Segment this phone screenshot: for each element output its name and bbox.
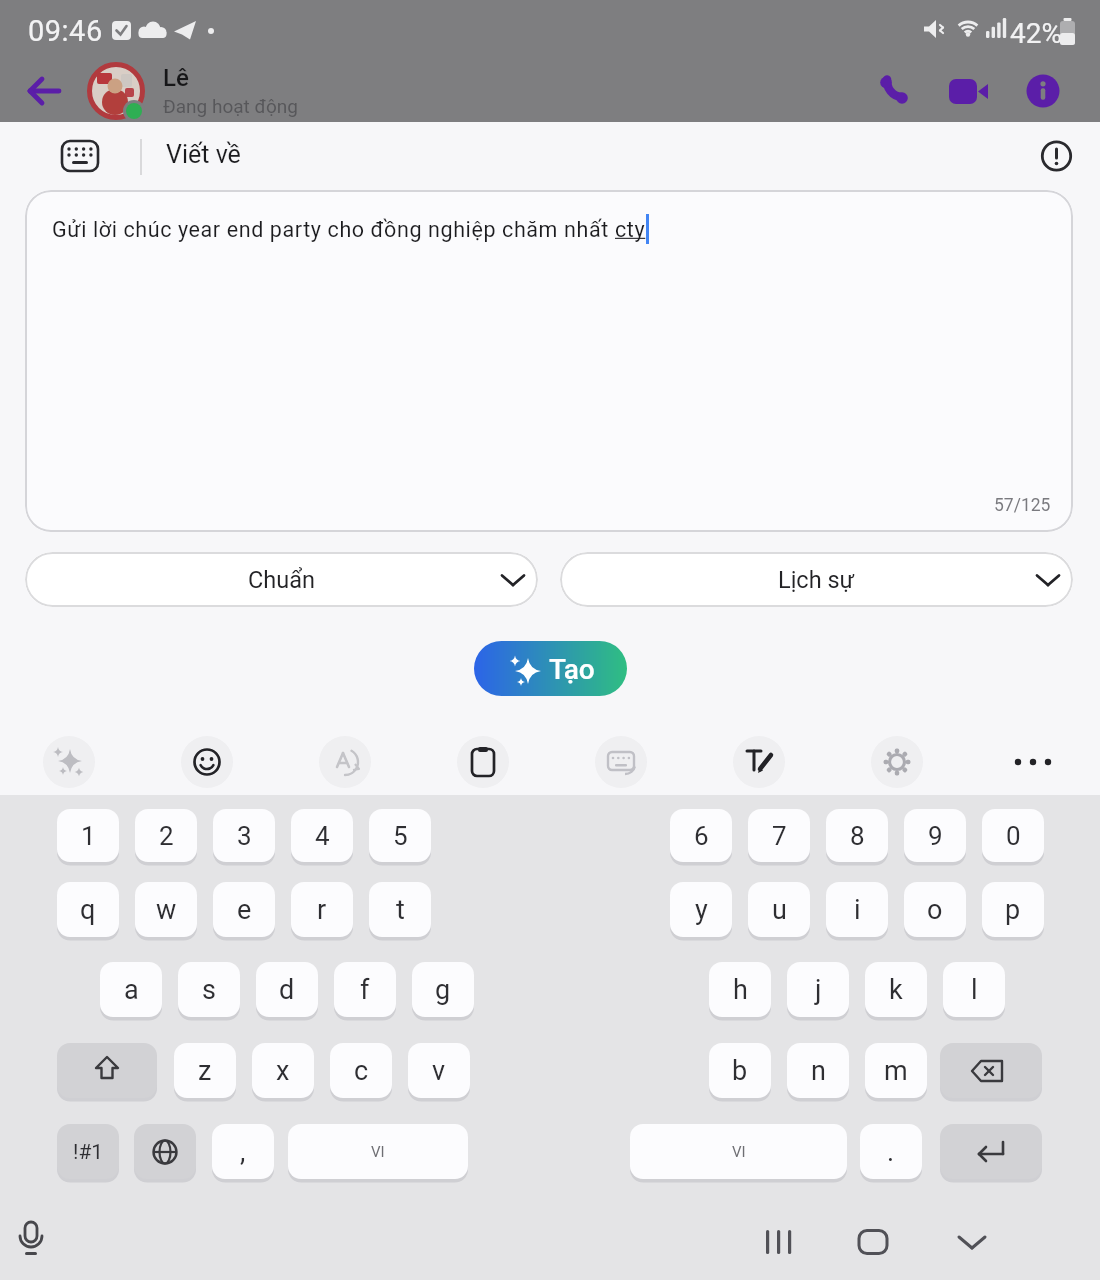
button[interactable] xyxy=(871,66,921,116)
button[interactable]: u xyxy=(748,882,810,938)
button[interactable]: i xyxy=(826,882,888,938)
button[interactable] xyxy=(48,130,112,182)
staticText: 3 xyxy=(237,821,252,851)
button[interactable] xyxy=(1007,736,1059,788)
button[interactable] xyxy=(871,736,923,788)
staticText: k xyxy=(889,974,903,1006)
staticText: x xyxy=(276,1055,290,1087)
button[interactable] xyxy=(940,1124,1042,1180)
button[interactable] xyxy=(134,1124,196,1180)
staticText: h xyxy=(733,974,748,1006)
button[interactable]: y xyxy=(670,882,732,938)
button[interactable] xyxy=(755,1218,803,1266)
button[interactable] xyxy=(181,736,233,788)
button[interactable]: e xyxy=(213,882,275,938)
staticText: 1 xyxy=(81,821,96,851)
button[interactable]: b xyxy=(709,1043,771,1099)
button[interactable]: 6 xyxy=(670,809,732,863)
button[interactable]: z xyxy=(174,1043,236,1099)
staticText: q xyxy=(80,894,96,926)
button[interactable]: 4 xyxy=(291,809,353,863)
staticText: VI xyxy=(732,1143,746,1161)
button[interactable]: Gửi lời chúc year end party cho đồng ngh… xyxy=(25,190,1073,532)
staticText: o xyxy=(927,894,943,926)
staticText: u xyxy=(772,894,787,926)
button[interactable]: p xyxy=(982,882,1044,938)
staticText: t xyxy=(396,894,405,926)
button[interactable]: 9 xyxy=(904,809,966,863)
button[interactable]: 1 xyxy=(57,809,119,863)
staticText: r xyxy=(317,894,327,926)
button[interactable] xyxy=(43,736,95,788)
button[interactable]: 8 xyxy=(826,809,888,863)
button[interactable]: r xyxy=(291,882,353,938)
button[interactable] xyxy=(849,1218,897,1266)
button[interactable]: m xyxy=(865,1043,927,1099)
button[interactable]: n xyxy=(787,1043,849,1099)
staticText: cty xyxy=(615,217,646,242)
button[interactable]: a xyxy=(100,962,162,1018)
button[interactable]: v xyxy=(408,1043,470,1099)
button[interactable] xyxy=(940,1043,1042,1099)
button[interactable]: c xyxy=(330,1043,392,1099)
staticText: c xyxy=(354,1055,369,1087)
staticText: e xyxy=(237,894,252,926)
button[interactable]: 7 xyxy=(748,809,810,863)
staticText: VI xyxy=(371,1143,385,1161)
button[interactable] xyxy=(1026,74,1062,110)
button[interactable] xyxy=(733,736,785,788)
button[interactable] xyxy=(457,736,509,788)
button[interactable] xyxy=(8,1216,56,1264)
staticText: 7 xyxy=(772,821,787,851)
staticText: . xyxy=(887,1136,895,1168)
button[interactable] xyxy=(948,1218,996,1266)
staticText: y xyxy=(695,894,708,926)
staticText: 2 xyxy=(159,821,174,851)
staticText: j xyxy=(815,974,822,1006)
button[interactable]: k xyxy=(865,962,927,1018)
button[interactable]: Chuẩn xyxy=(25,552,538,607)
button[interactable]: j xyxy=(787,962,849,1018)
button[interactable]: h xyxy=(709,962,771,1018)
staticText: d xyxy=(279,974,295,1006)
button[interactable]: x xyxy=(252,1043,314,1099)
button[interactable] xyxy=(595,736,647,788)
button[interactable]: t xyxy=(369,882,431,938)
staticText: i xyxy=(854,894,861,926)
button[interactable]: 5 xyxy=(369,809,431,863)
staticText: l xyxy=(971,974,978,1006)
button[interactable]: Lịch sự xyxy=(560,552,1073,607)
button[interactable]: s xyxy=(178,962,240,1018)
button[interactable]: , xyxy=(212,1124,274,1180)
button[interactable] xyxy=(943,70,998,114)
button[interactable]: 0 xyxy=(982,809,1044,863)
button[interactable]: f xyxy=(334,962,396,1018)
staticText: 0 xyxy=(1006,821,1021,851)
staticText: Đang hoạt động xyxy=(163,95,298,117)
button[interactable] xyxy=(22,68,68,114)
button[interactable]: !#1 xyxy=(57,1124,119,1180)
staticText: 4 xyxy=(315,821,330,851)
staticText: 57/125 xyxy=(994,495,1051,516)
staticText: , xyxy=(240,1136,246,1168)
button[interactable]: 3 xyxy=(213,809,275,863)
button[interactable]: 2 xyxy=(135,809,197,863)
button[interactable]: Tạo xyxy=(474,641,627,696)
button[interactable]: VI xyxy=(288,1124,468,1180)
button[interactable]: d xyxy=(256,962,318,1018)
button[interactable]: w xyxy=(135,882,197,938)
button[interactable]: VI xyxy=(630,1124,847,1180)
button[interactable] xyxy=(57,1043,157,1099)
button[interactable] xyxy=(1038,138,1075,175)
button[interactable]: o xyxy=(904,882,966,938)
staticText: !#1 xyxy=(73,1140,104,1165)
staticText: Tạo xyxy=(549,653,595,686)
button[interactable]: q xyxy=(57,882,119,938)
staticText: w xyxy=(156,894,177,926)
button[interactable] xyxy=(87,62,147,122)
button[interactable]: l xyxy=(943,962,1005,1018)
button[interactable]: g xyxy=(412,962,474,1018)
button[interactable] xyxy=(319,736,371,788)
staticText: n xyxy=(811,1055,826,1087)
button[interactable]: . xyxy=(860,1124,922,1180)
